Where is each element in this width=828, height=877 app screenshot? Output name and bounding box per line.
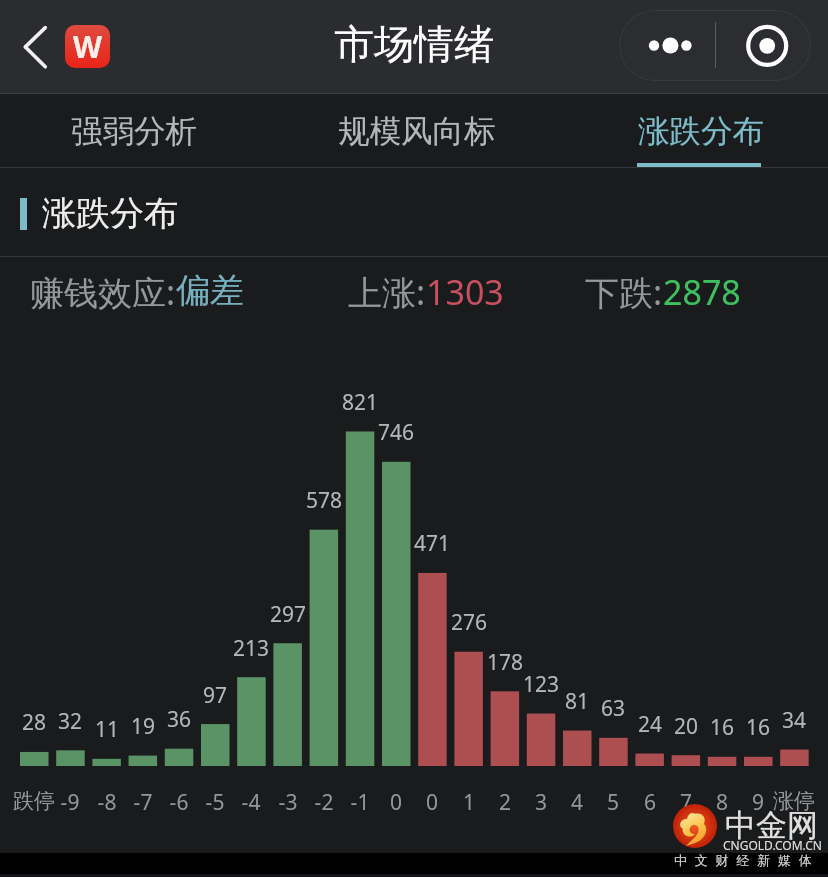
staticText: 赚钱效应: bbox=[30, 269, 176, 315]
staticText: 市场情绪 bbox=[334, 19, 494, 69]
staticText: 规模风向标 bbox=[338, 112, 496, 152]
staticText: 上涨: bbox=[348, 269, 426, 315]
staticText: 1303 bbox=[426, 269, 504, 315]
staticText: 跌停 bbox=[0, 788, 74, 814]
staticText: -1 bbox=[320, 788, 400, 817]
staticText: 821 bbox=[320, 388, 400, 417]
staticText: 276 bbox=[429, 608, 509, 637]
staticText: 6 bbox=[610, 788, 690, 817]
staticText: 3 bbox=[501, 788, 581, 817]
staticText: 下跌: bbox=[585, 269, 663, 315]
staticText: 213 bbox=[211, 634, 291, 663]
button[interactable]: Back bbox=[8, 20, 62, 74]
staticText: 20 bbox=[646, 712, 726, 741]
staticText: 746 bbox=[356, 418, 436, 447]
staticText: 36 bbox=[139, 705, 219, 734]
staticText: 123 bbox=[501, 670, 581, 699]
button[interactable]: Close bbox=[716, 10, 811, 81]
staticText: 偏差 bbox=[176, 269, 244, 312]
staticText: -3 bbox=[248, 788, 328, 817]
staticText: 178 bbox=[465, 648, 545, 677]
staticText: 9 bbox=[718, 788, 798, 817]
staticText: -9 bbox=[30, 788, 110, 817]
staticText: 578 bbox=[284, 486, 364, 515]
staticText: 强弱分析 bbox=[71, 112, 197, 152]
staticText: 32 bbox=[30, 707, 110, 736]
button[interactable]: 规模风向标 bbox=[279, 94, 555, 168]
staticText: -7 bbox=[103, 788, 183, 817]
staticText: 涨跌分布 bbox=[638, 112, 764, 152]
staticText: 中金网 bbox=[725, 806, 818, 845]
staticText: 24 bbox=[610, 710, 690, 739]
staticText: 16 bbox=[682, 713, 762, 742]
staticText: 涨停 bbox=[754, 788, 828, 814]
staticText: 34 bbox=[754, 706, 828, 735]
staticText: 81 bbox=[537, 687, 617, 716]
staticText: 1 bbox=[429, 788, 509, 817]
staticText: 中 文 财 经 新 媒 体 bbox=[674, 851, 814, 869]
staticText: 16 bbox=[718, 713, 798, 742]
staticText: 63 bbox=[573, 694, 653, 723]
staticText: 19 bbox=[103, 712, 183, 741]
staticText: 4 bbox=[537, 788, 617, 817]
staticText: -2 bbox=[284, 788, 364, 817]
button[interactable]: 强弱分析 bbox=[0, 94, 272, 168]
staticText: 8 bbox=[682, 788, 762, 817]
staticText: 涨跌分布 bbox=[42, 192, 178, 235]
button[interactable]: More options bbox=[619, 10, 716, 81]
staticText: 28 bbox=[0, 708, 74, 737]
staticText: 471 bbox=[392, 529, 472, 558]
staticText: 97 bbox=[175, 681, 255, 710]
staticText: -6 bbox=[139, 788, 219, 817]
staticText: 5 bbox=[573, 788, 653, 817]
staticText: 0 bbox=[392, 788, 472, 817]
staticText: -8 bbox=[67, 788, 147, 817]
staticText: 11 bbox=[67, 715, 147, 744]
staticText: 7 bbox=[646, 788, 726, 817]
staticText: 2 bbox=[465, 788, 545, 817]
staticText: W bbox=[73, 26, 103, 67]
staticText: 2878 bbox=[663, 269, 741, 315]
staticText: 0 bbox=[356, 788, 436, 817]
staticText: 297 bbox=[248, 600, 328, 629]
staticText: -4 bbox=[211, 788, 291, 817]
button[interactable]: App logo bbox=[65, 25, 110, 68]
staticText: CNGOLD.COM.CN bbox=[723, 837, 822, 853]
button[interactable]: 涨跌分布 bbox=[563, 94, 828, 168]
staticText: -5 bbox=[175, 788, 255, 817]
